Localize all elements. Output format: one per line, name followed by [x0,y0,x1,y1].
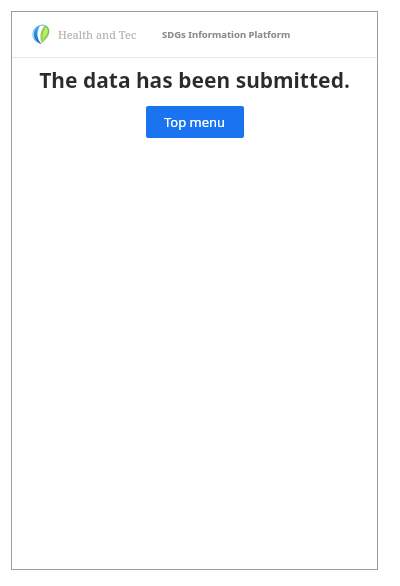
staticText: The data has been submitted. [27,66,362,95]
staticText: Top menu [164,113,226,131]
button[interactable]: Top menu [146,106,244,138]
button[interactable]: Health and Tec logo [32,24,52,44]
staticText: SDGs Information Platform [162,28,291,41]
staticText: Health and Tec [58,27,137,42]
